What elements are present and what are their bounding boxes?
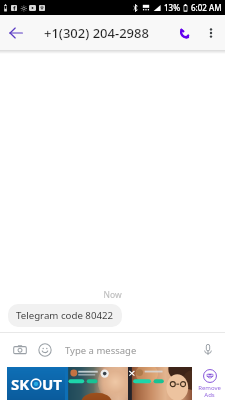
button[interactable]: Call [169, 18, 199, 48]
staticText: +1(302) 204-2988 [44, 24, 149, 42]
staticText: Remove Ads [198, 384, 221, 399]
button[interactable]: SK [7, 367, 65, 400]
button[interactable]: Voice message [194, 336, 222, 364]
button[interactable]: Remove Ads [193, 367, 225, 400]
staticText: Telegram code 80422 [16, 309, 114, 322]
staticText: Type a message [65, 344, 137, 357]
button[interactable]: Emoji [31, 336, 59, 364]
button[interactable]: Telegram code 80422 [8, 304, 122, 327]
staticText: UT [42, 374, 62, 394]
staticText: SK [11, 374, 30, 394]
staticText: 13% [164, 2, 180, 13]
button[interactable]: Camera [6, 336, 34, 364]
button[interactable]: More options [198, 20, 224, 46]
button[interactable]: Back [0, 17, 32, 49]
staticText: 6:02 AM [191, 2, 222, 13]
staticText: Now [0, 289, 225, 301]
